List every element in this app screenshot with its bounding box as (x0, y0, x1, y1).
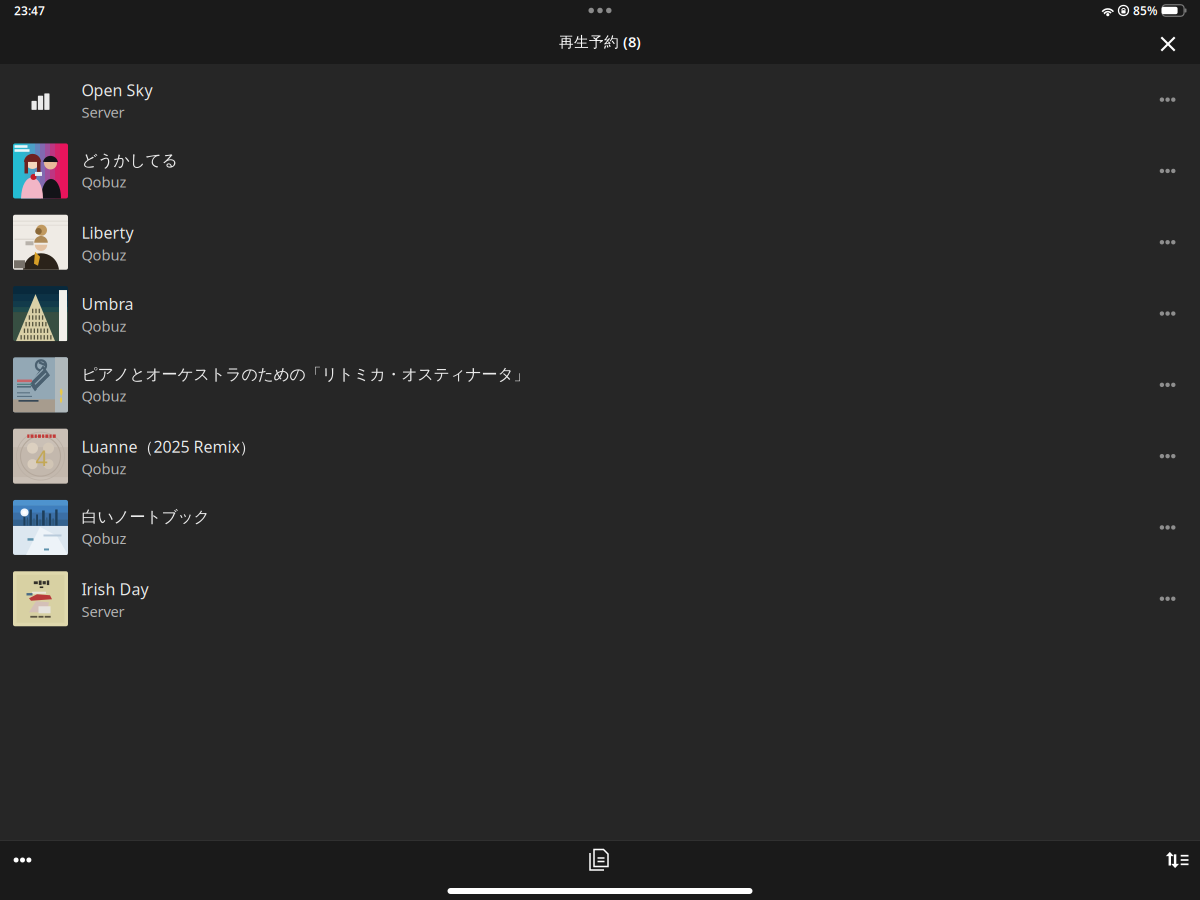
button[interactable]: どうかしてる (0, 135, 1200, 207)
staticText: Server (81, 102, 124, 122)
button[interactable]: Irish Day (0, 563, 1200, 634)
staticText: Qobuz (81, 172, 126, 192)
button[interactable]: 白いノートブック (0, 492, 1200, 563)
button[interactable]: Close (1146, 25, 1190, 63)
staticText: ピアノとオーケストラのための「リトミカ・オスティナータ」 (81, 364, 529, 384)
button[interactable]: Sort queue (1154, 840, 1200, 880)
staticText: Qobuz (81, 459, 126, 478)
staticText: 85% (1133, 2, 1158, 18)
staticText: Open Sky (81, 79, 152, 100)
staticText: Luanne（2025 Remix） (81, 436, 255, 457)
staticText: Qobuz (81, 529, 126, 548)
staticText: Irish Day (81, 578, 148, 600)
staticText: Server (81, 601, 124, 621)
staticText: Qobuz (81, 386, 126, 405)
staticText: Umbra (81, 293, 133, 314)
staticText: Liberty (81, 222, 133, 243)
button[interactable]: Open Sky (0, 64, 1200, 135)
staticText: どうかしてる (81, 151, 177, 170)
staticText: Qobuz (81, 245, 126, 264)
button[interactable]: Now Playing (576, 839, 624, 881)
button[interactable]: 4 (0, 420, 1200, 492)
staticText: 4 (35, 444, 47, 472)
staticText: 再生予約 (8) (559, 32, 641, 51)
staticText: 白いノートブック (81, 507, 209, 527)
button[interactable]: ピアノとオーケストラのための「リトミカ・オスティナータ」 (0, 349, 1200, 420)
staticText: Qobuz (81, 316, 126, 336)
button[interactable]: Liberty (0, 207, 1200, 278)
button[interactable]: More options (0, 840, 45, 880)
staticText: 23:47 (14, 2, 45, 18)
button[interactable]: Umbra (0, 278, 1200, 349)
